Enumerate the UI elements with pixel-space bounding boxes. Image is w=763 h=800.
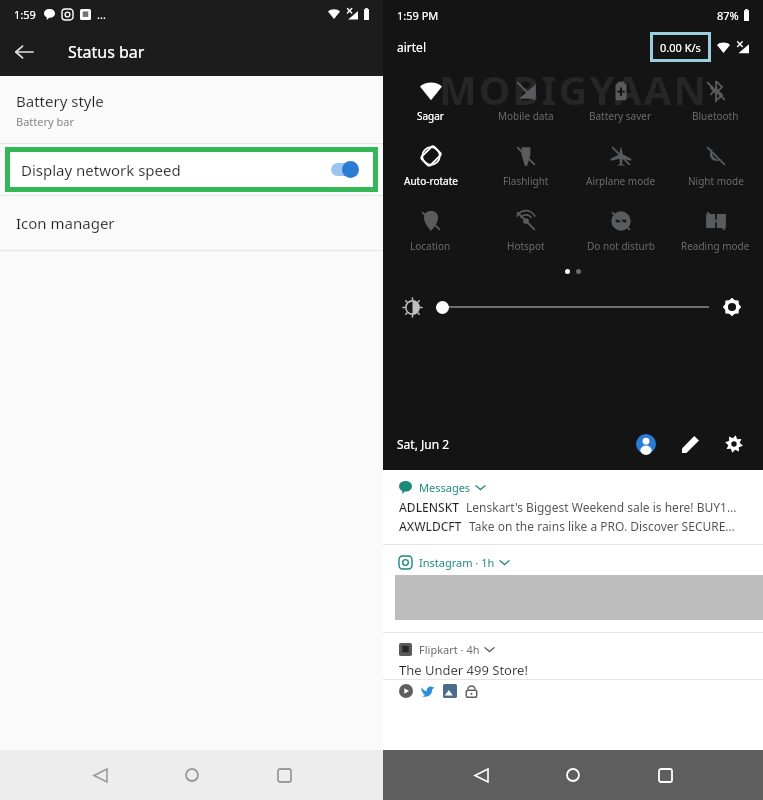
staticText: AXWLDCFT: [399, 518, 462, 534]
staticText: Flipkart · 4h: [419, 642, 480, 657]
button[interactable]: Messages: [383, 480, 763, 534]
button[interactable]: Flipkart · 4h: [383, 642, 763, 679]
staticText: Status bar: [68, 41, 145, 63]
staticText: Airplane mode: [586, 174, 656, 188]
staticText: Night mode: [688, 174, 744, 188]
button[interactable]: Battery saver: [573, 78, 668, 125]
staticText: Battery bar: [16, 114, 74, 129]
button[interactable]: Do not disturb: [573, 208, 668, 255]
staticText: 87%: [717, 8, 739, 23]
staticText: Auto-rotate: [404, 174, 458, 188]
staticText: Bluetooth: [692, 109, 739, 123]
button[interactable]: Hotspot: [478, 208, 573, 255]
staticText: The Under 499 Store!: [399, 661, 528, 679]
button[interactable]: Mobile data: [478, 78, 573, 125]
staticText: airtel: [397, 39, 426, 55]
button[interactable]: Bluetooth: [668, 78, 763, 125]
staticText: Lenskart's Biggest Weekend sale is here!…: [466, 499, 737, 515]
button[interactable]: Location: [383, 208, 478, 255]
staticText: 1:59 PM: [397, 8, 439, 23]
button[interactable]: Back: [0, 28, 48, 76]
button[interactable]: Home: [549, 751, 597, 799]
staticText: MOBIGYAAN: [439, 62, 708, 116]
button[interactable]: Back: [457, 751, 505, 799]
staticText: Instagram · 1h: [419, 555, 495, 570]
staticText: Sat, Jun 2: [397, 436, 450, 452]
button[interactable]: Battery style: [0, 76, 383, 143]
button[interactable]: Auto-rotate: [383, 143, 478, 190]
button[interactable]: Instagram · 1h: [383, 555, 763, 620]
button[interactable]: Edit: [675, 429, 705, 459]
button[interactable]: Sagar: [383, 78, 478, 125]
staticText: Icon manager: [16, 213, 115, 233]
button[interactable]: Back: [76, 751, 124, 799]
button[interactable]: Display network speed: [10, 152, 373, 187]
staticText: 0.00 K/s: [660, 40, 701, 55]
staticText: Flashlight: [503, 174, 549, 188]
button[interactable]: Flashlight: [478, 143, 573, 190]
staticText: ...: [97, 7, 106, 22]
button[interactable]: User: [631, 429, 661, 459]
button[interactable]: Recents: [260, 751, 308, 799]
staticText: Battery saver: [589, 109, 652, 123]
staticText: Mobile data: [498, 109, 554, 123]
staticText: Display network speed: [21, 160, 181, 180]
button[interactable]: Reading mode: [668, 208, 763, 255]
staticText: Location: [410, 239, 451, 253]
staticText: Take on the rains like a PRO. Discover S…: [469, 518, 735, 534]
button[interactable]: Auto brightness: [721, 296, 743, 318]
staticText: Reading mode: [681, 239, 750, 253]
button[interactable]: Icon manager: [0, 196, 383, 250]
button[interactable]: Settings: [719, 429, 749, 459]
staticText: Hotspot: [507, 239, 545, 253]
staticText: Sagar: [417, 109, 444, 123]
button[interactable]: Recents: [641, 751, 689, 799]
staticText: Battery style: [16, 91, 104, 111]
staticText: ADLENSKT: [399, 499, 459, 515]
staticText: Messages: [419, 480, 471, 495]
staticText: Do not disturb: [587, 239, 655, 253]
button[interactable]: Airplane mode: [573, 143, 668, 190]
staticText: 1:59: [14, 7, 36, 22]
button[interactable]: Night mode: [668, 143, 763, 190]
button[interactable]: Home: [168, 751, 216, 799]
